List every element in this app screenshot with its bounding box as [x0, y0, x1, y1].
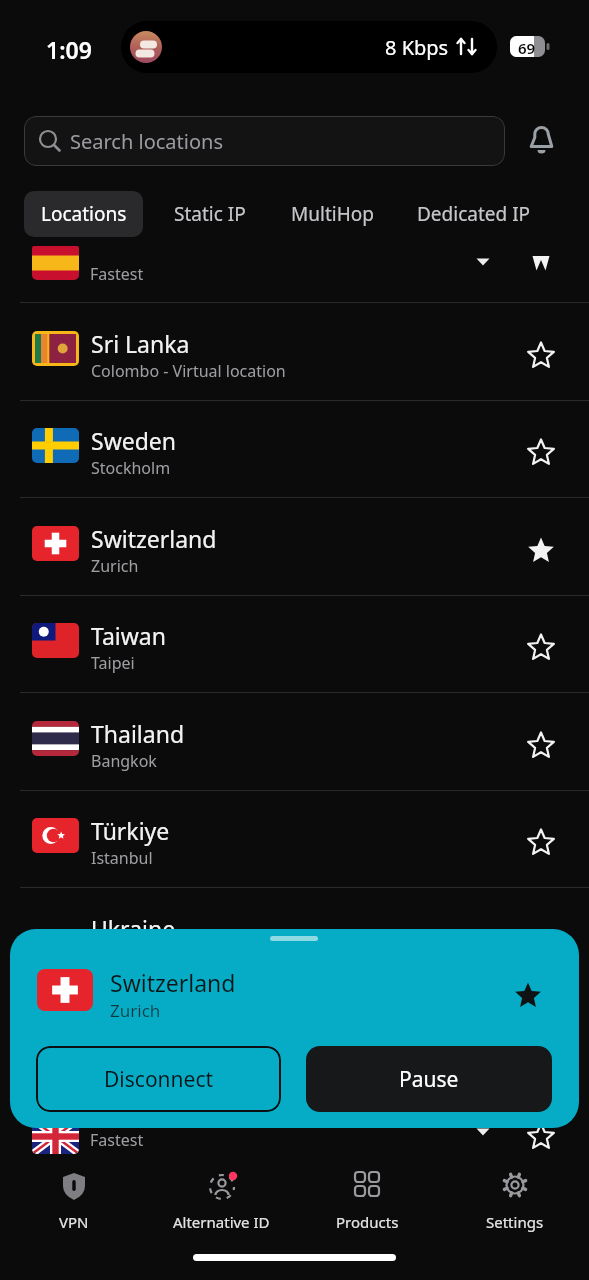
button[interactable]: Alternative ID — [151, 1168, 291, 1232]
staticText: Alternative ID — [173, 1212, 270, 1232]
staticText: Zurich — [91, 555, 139, 577]
staticText: MultiHop — [291, 201, 374, 227]
staticText: Disconnect — [104, 1065, 214, 1094]
staticText: Pause — [399, 1065, 459, 1094]
button[interactable]: Fastest — [0, 1100, 589, 1160]
staticText: Fastest — [90, 263, 144, 285]
staticText: Stockholm — [91, 457, 171, 479]
staticText: Sweden — [91, 425, 177, 456]
button[interactable]: Thailand — [0, 693, 589, 790]
staticText: Switzerland — [110, 967, 236, 998]
button[interactable]: VPN — [34, 1168, 114, 1232]
button[interactable]: Fastest — [0, 246, 589, 302]
button[interactable]: Taiwan — [0, 595, 589, 692]
button[interactable]: Pause — [306, 1046, 552, 1112]
button[interactable] — [524, 121, 560, 161]
button[interactable]: Search locations — [24, 116, 505, 166]
staticText: Istanbul — [91, 847, 153, 869]
staticText: 8 Kbps — [385, 34, 449, 61]
button[interactable]: Türkiye — [0, 790, 589, 887]
staticText: Fastest — [90, 1129, 144, 1151]
button[interactable]: Settings — [455, 1168, 575, 1232]
button[interactable]: Disconnect — [36, 1046, 281, 1112]
staticText: Thailand — [91, 718, 185, 749]
button[interactable]: Dedicated IP — [404, 191, 544, 237]
staticText: Taipei — [91, 652, 135, 674]
button[interactable]: Switzerland — [0, 498, 589, 595]
button[interactable]: Products — [307, 1168, 427, 1232]
staticText: Ukraine — [91, 913, 176, 930]
staticText: Colombo - Virtual location — [91, 360, 286, 382]
staticText: Switzerland — [91, 523, 217, 554]
staticText: Türkiye — [91, 815, 170, 846]
button[interactable]: Sweden — [0, 400, 589, 497]
staticText: Settings — [486, 1212, 544, 1232]
staticText: VPN — [59, 1212, 89, 1232]
staticText: Locations — [41, 201, 127, 227]
staticText: 69 — [518, 38, 536, 58]
staticText: Dedicated IP — [417, 201, 531, 227]
staticText: 1:09 — [46, 34, 92, 65]
button[interactable]: Locations — [24, 191, 143, 237]
button[interactable]: Static IP — [160, 191, 260, 237]
staticText: Sri Lanka — [91, 328, 190, 359]
button[interactable]: Sri Lanka — [0, 303, 589, 400]
staticText: Products — [336, 1212, 399, 1232]
staticText: Taiwan — [91, 620, 166, 651]
staticText: Static IP — [174, 201, 246, 227]
staticText: Zurich — [110, 999, 161, 1022]
staticText: Search locations — [70, 128, 223, 155]
button[interactable]: MultiHop — [280, 191, 384, 237]
staticText: Bangkok — [91, 750, 157, 772]
